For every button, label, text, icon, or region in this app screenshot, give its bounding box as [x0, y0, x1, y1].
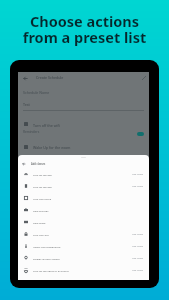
staticText: Turn off the lights or all sound	[33, 269, 69, 272]
staticText: Add Action	[132, 245, 144, 248]
staticText: Wake Up for the exam	[33, 145, 71, 150]
button[interactable]: Turn off the lights or all sound	[24, 264, 144, 276]
staticText: Turn off the wifi	[33, 173, 52, 176]
button[interactable]: Turn off the wifi	[24, 180, 144, 192]
staticText: Schedule Name	[23, 90, 50, 95]
button[interactable]: Lock the Phone	[24, 192, 144, 204]
staticText: Add classes	[31, 162, 46, 166]
staticText: Add Action	[132, 269, 144, 272]
button[interactable]: Display all item system	[24, 252, 144, 264]
staticText: Display all item system	[33, 257, 60, 260]
button[interactable]: Turn off the wifi	[24, 168, 144, 180]
staticText: Lock the Phone	[33, 197, 52, 200]
staticText: Take Selfie	[33, 221, 46, 224]
staticText: Add Action	[132, 173, 144, 176]
staticText: Turn off the wifi	[33, 123, 60, 128]
button[interactable]: Turn the Lock	[24, 228, 144, 240]
staticText: Turn the Lock	[33, 233, 49, 236]
staticText: Take Pictures	[33, 209, 49, 212]
button[interactable]: Take Selfie	[24, 216, 144, 228]
staticText: Add Action	[132, 185, 144, 188]
button[interactable]: Take Pictures	[24, 204, 144, 216]
staticText: Add Action	[132, 233, 144, 236]
staticText: Choose actions from a preset list	[0, 11, 169, 48]
other: Back	[23, 76, 28, 81]
staticText: Turn off the wifi	[33, 185, 52, 188]
staticText: Reminders	[23, 130, 40, 134]
other: Edit	[142, 76, 146, 80]
button[interactable]: Add classes	[22, 159, 145, 168]
button[interactable]: Adjust the temperature	[24, 240, 144, 252]
staticText: Add Action	[132, 257, 144, 260]
staticText: Test	[23, 102, 30, 107]
staticText: Adjust the temperature	[33, 245, 61, 248]
staticText: Create Schedule	[36, 75, 64, 80]
